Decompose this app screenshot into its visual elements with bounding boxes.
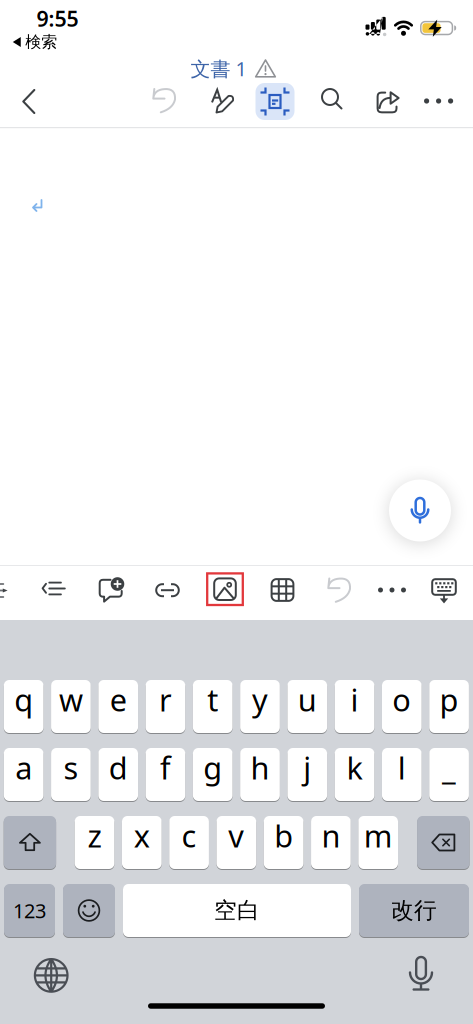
staticText: p (440, 679, 459, 720)
staticText: f (160, 747, 171, 788)
button[interactable]: j (287, 747, 327, 801)
staticText: i (350, 679, 358, 720)
staticText: s (63, 747, 78, 788)
button[interactable]: n (311, 815, 351, 869)
button[interactable]: z (75, 815, 114, 869)
button[interactable]: 元に戻す (324, 576, 352, 604)
button[interactable]: 次のキーボード (32, 956, 70, 994)
button[interactable]: p (429, 679, 469, 733)
staticText: q (14, 679, 33, 720)
staticText: c (182, 815, 197, 856)
button[interactable]: シフト (4, 815, 56, 869)
staticText: y (252, 679, 268, 720)
button[interactable]: リンク (154, 582, 180, 598)
button[interactable]: 絵文字 (63, 883, 115, 937)
button[interactable]: その他 (378, 585, 408, 595)
button[interactable]: k (335, 747, 374, 801)
button[interactable]: h (240, 747, 280, 801)
staticText: d (109, 747, 128, 788)
staticText: w (59, 679, 83, 720)
button[interactable]: f (146, 747, 185, 801)
button[interactable]: 検索 (320, 87, 344, 113)
button[interactable]: 音声入力 (407, 955, 435, 995)
button[interactable]: インデント (0, 579, 11, 601)
button[interactable]: b (264, 815, 303, 869)
button[interactable]: モバイル表示 (255, 83, 294, 120)
button[interactable]: 123 (4, 883, 55, 937)
button[interactable]: コメント追加 (97, 577, 125, 603)
button[interactable]: キーボードを閉じる (431, 578, 457, 604)
staticText: u (298, 679, 317, 720)
button[interactable]: 削除 (417, 815, 469, 869)
button[interactable]: d (98, 747, 138, 801)
staticText: h (250, 747, 269, 788)
button[interactable]: 画像 (206, 572, 244, 606)
staticText: _ (442, 747, 456, 788)
button[interactable]: _ (429, 747, 469, 801)
button[interactable]: w (51, 679, 91, 733)
button[interactable]: o (382, 679, 422, 733)
staticText: z (87, 815, 101, 856)
staticText: o (392, 679, 411, 720)
button[interactable]: a (4, 747, 43, 801)
staticText: 検索 (25, 32, 57, 52)
staticText: a (15, 747, 32, 788)
button[interactable]: 編集 (205, 88, 235, 116)
staticText: b (274, 815, 293, 856)
staticText: j (303, 747, 311, 788)
staticText: k (346, 747, 362, 788)
button[interactable]: u (287, 679, 327, 733)
button[interactable]: 改行 (359, 883, 469, 937)
button[interactable]: 空白 (123, 883, 351, 937)
button[interactable]: t (193, 679, 233, 733)
staticText: 123 (13, 897, 46, 924)
staticText: n (321, 815, 340, 856)
button[interactable]: 検索に戻る (13, 32, 57, 52)
staticText: l (398, 747, 406, 788)
staticText: 空白 (214, 897, 260, 924)
button[interactable]: r (146, 679, 185, 733)
button[interactable]: s (51, 747, 91, 801)
button[interactable]: 表 (270, 578, 294, 602)
button[interactable]: v (216, 815, 256, 869)
staticText: m (364, 815, 393, 856)
staticText: r (159, 679, 172, 720)
button[interactable]: アウトデント (42, 582, 68, 598)
staticText: 文書 1 (190, 55, 246, 82)
button[interactable]: e (98, 679, 138, 733)
staticText: x (134, 815, 150, 856)
staticText: e (110, 679, 127, 720)
button[interactable]: m (358, 815, 398, 869)
staticText: 9:55 (36, 4, 78, 33)
button[interactable]: 戻る (21, 88, 36, 114)
button[interactable]: q (4, 679, 43, 733)
button[interactable]: g (193, 747, 233, 801)
staticText: t (207, 679, 218, 720)
button[interactable]: c (169, 815, 209, 869)
button[interactable]: x (122, 815, 162, 869)
staticText: g (203, 747, 222, 788)
staticText: 改行 (391, 897, 437, 924)
button[interactable]: i (335, 679, 374, 733)
button[interactable]: l (382, 747, 422, 801)
staticText: v (228, 815, 244, 856)
button[interactable]: y (240, 679, 280, 733)
button[interactable]: 元に戻す (149, 87, 177, 115)
button[interactable]: 共有 (372, 88, 404, 116)
button[interactable]: 文書 1 (190, 55, 277, 82)
button[interactable]: その他 (424, 96, 458, 106)
button[interactable]: 音声入力 (389, 479, 451, 541)
